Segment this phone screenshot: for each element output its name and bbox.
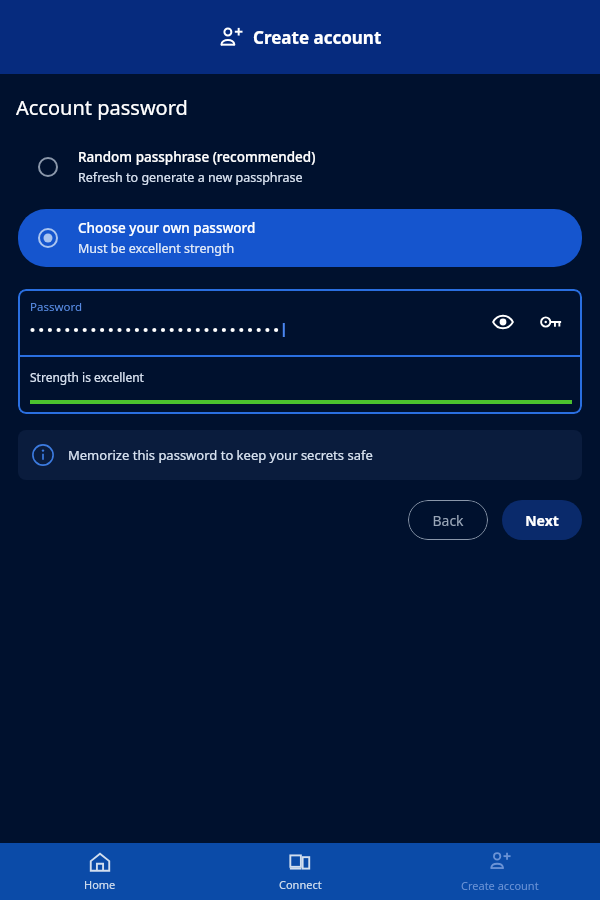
staticText: Strength is excellent xyxy=(30,369,144,385)
button[interactable]: Random passphrase (recommended) xyxy=(18,139,582,195)
staticText: Refresh to generate a new passphrase xyxy=(78,169,303,186)
button[interactable]: Connect xyxy=(200,843,400,900)
staticText: Password xyxy=(30,299,83,315)
staticText: Create account xyxy=(253,26,382,49)
staticText: Create account xyxy=(461,878,539,893)
staticText: Back xyxy=(432,511,464,530)
staticText: Memorize this password to keep your secr… xyxy=(68,446,373,464)
staticText: Connect xyxy=(279,877,322,892)
button[interactable]: Home xyxy=(0,843,200,900)
button[interactable]: Create account xyxy=(400,843,600,900)
staticText: Home xyxy=(84,877,116,892)
button[interactable]: Memorize this password to keep your secr… xyxy=(18,430,582,480)
button[interactable]: Generate password xyxy=(534,305,568,339)
button[interactable]: Next xyxy=(502,500,582,540)
staticText: Choose your own password xyxy=(78,219,256,237)
staticText: Random passphrase (recommended) xyxy=(78,148,316,166)
staticText: Next xyxy=(525,511,559,530)
button[interactable]: Show password xyxy=(486,305,520,339)
staticText: Must be excellent strength xyxy=(78,240,235,257)
button[interactable]: Choose your own password xyxy=(18,209,582,267)
staticText: Account password xyxy=(16,94,188,121)
button[interactable]: Back xyxy=(408,500,488,540)
